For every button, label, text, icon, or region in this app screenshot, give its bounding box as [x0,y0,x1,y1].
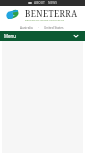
button[interactable]: Search [28,2,32,4]
staticText: BENEFICIAL REUSE SOLUTIONS [25,18,65,21]
button[interactable]: Menu [0,31,20,41]
staticText: BENETERRA [25,8,78,19]
button[interactable]: Expand menu [73,33,79,39]
button[interactable]: NEWS [48,1,57,5]
staticText: · [38,26,39,30]
button[interactable]: United States [44,26,64,30]
staticText: Menu [4,33,16,39]
button[interactable]: BENETERRA [0,6,53,17]
button[interactable]: Australia [20,26,33,30]
button[interactable]: ABOUT [34,1,45,5]
